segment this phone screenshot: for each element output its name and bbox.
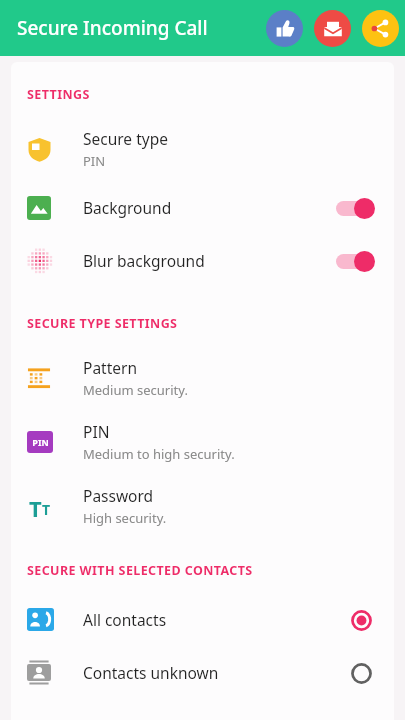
staticText: Medium to high security. bbox=[83, 445, 235, 463]
staticText: T bbox=[29, 493, 42, 519]
staticText: Secure Incoming Call bbox=[17, 15, 208, 41]
staticText: All contacts bbox=[83, 609, 167, 630]
staticText: High security. bbox=[83, 509, 167, 527]
staticText: PIN bbox=[83, 421, 110, 442]
staticText: Medium security. bbox=[83, 381, 188, 399]
button[interactable]: Like bbox=[266, 10, 303, 47]
button[interactable]: Share bbox=[362, 10, 399, 47]
button[interactable]: Selected bbox=[346, 605, 376, 635]
staticText: SECURE TYPE SETTINGS bbox=[27, 315, 178, 332]
button[interactable]: Toggle bbox=[334, 196, 376, 220]
staticText: Password bbox=[83, 485, 154, 506]
button[interactable]: Mail bbox=[314, 10, 351, 47]
button[interactable]: Secure type bbox=[11, 117, 394, 181]
staticText: Background bbox=[83, 197, 172, 218]
button[interactable]: Background bbox=[11, 181, 394, 234]
staticText: Secure type bbox=[83, 128, 168, 149]
button[interactable]: PIN bbox=[11, 410, 394, 474]
button[interactable]: All contacts bbox=[11, 593, 394, 646]
staticText: Pattern bbox=[83, 357, 137, 378]
staticText: Contacts unknown bbox=[83, 662, 219, 683]
staticText: SECURE WITH SELECTED CONTACTS bbox=[27, 562, 253, 579]
button[interactable]: Pattern bbox=[11, 346, 394, 410]
staticText: Blur background bbox=[83, 250, 205, 271]
button[interactable]: T bbox=[11, 474, 394, 538]
button[interactable]: Contacts unknown bbox=[11, 646, 394, 699]
button[interactable]: Blur background bbox=[11, 234, 394, 287]
button[interactable]: Toggle bbox=[334, 249, 376, 273]
button[interactable]: Not selected bbox=[346, 658, 376, 688]
staticText: T bbox=[42, 500, 51, 519]
staticText: SETTINGS bbox=[27, 86, 90, 103]
staticText: PIN bbox=[83, 152, 106, 170]
staticText: PIN bbox=[32, 436, 49, 448]
